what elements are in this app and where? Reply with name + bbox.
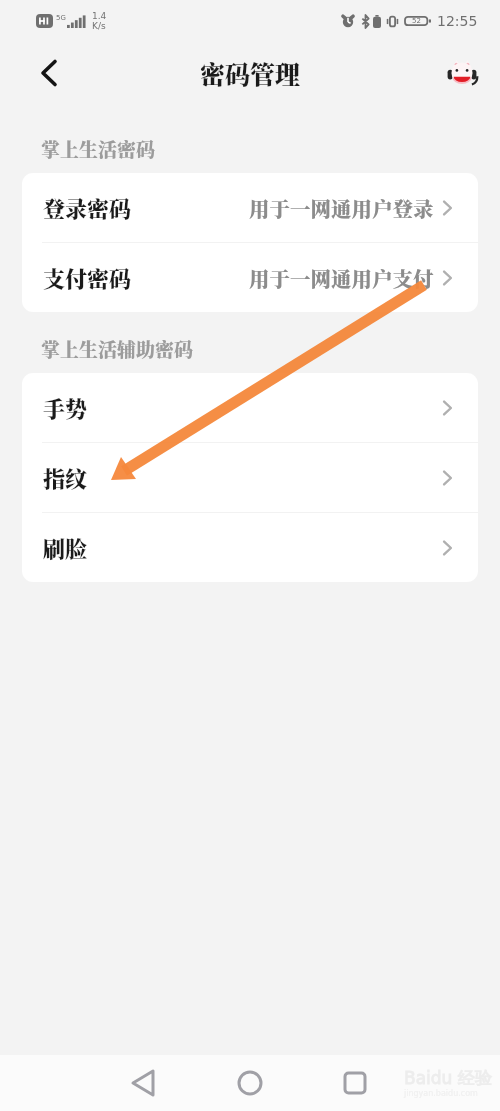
staticText: 12:55 [437, 13, 478, 29]
button[interactable]: 指纹 [22, 443, 478, 512]
staticText: 用于一网通用户支付 [249, 263, 434, 292]
button[interactable]: Back [31, 55, 67, 91]
staticText: 支付密码 [43, 262, 132, 294]
staticText: jingyan.baidu.com [404, 1089, 478, 1098]
staticText: 用于一网通用户登录 [249, 193, 434, 222]
staticText: K/s [92, 21, 106, 31]
staticText: 1.4 [92, 11, 107, 21]
staticText: 掌上生活密码 [41, 135, 156, 162]
staticText: 手势 [43, 392, 88, 424]
staticText: 登录密码 [43, 192, 132, 224]
button[interactable]: 登录密码 [22, 173, 478, 242]
staticText: 刷脸 [43, 532, 88, 564]
button[interactable]: 刷脸 [22, 513, 478, 582]
staticText: 掌上生活辅助密码 [41, 335, 194, 362]
staticText: Baidu 经验 [404, 1068, 492, 1089]
staticText: 5G [56, 14, 66, 22]
staticText: 52 [412, 17, 421, 25]
button[interactable]: Recents [337, 1065, 373, 1101]
button[interactable]: Back [125, 1065, 161, 1101]
staticText: 密码管理 [200, 55, 301, 91]
button[interactable]: Customer service [446, 57, 478, 89]
button[interactable]: Home [232, 1065, 268, 1101]
button[interactable]: 手势 [22, 373, 478, 442]
staticText: 指纹 [43, 462, 88, 494]
button[interactable]: 支付密码 [22, 243, 478, 312]
